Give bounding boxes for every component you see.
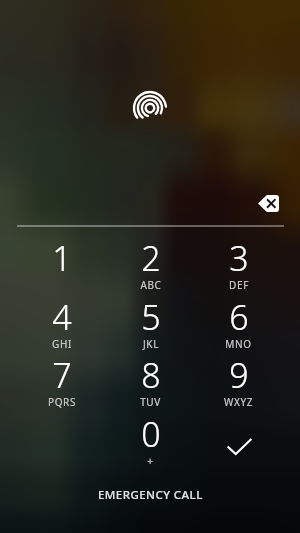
button[interactable]: 2 bbox=[106, 235, 195, 293]
staticText: TUV bbox=[140, 395, 161, 409]
button[interactable]: 0 bbox=[106, 411, 195, 469]
staticText: GHI bbox=[52, 337, 72, 351]
staticText: 5 bbox=[141, 294, 161, 340]
staticText: 0 bbox=[141, 411, 161, 457]
staticText: + bbox=[147, 454, 154, 468]
staticText: WXYZ bbox=[224, 395, 253, 409]
staticText: 8 bbox=[141, 352, 161, 398]
staticText: EMERGENCY CALL bbox=[98, 487, 203, 503]
staticText: JKL bbox=[143, 337, 159, 351]
button[interactable]: 1 bbox=[17, 235, 106, 293]
button[interactable]: 8 bbox=[106, 352, 195, 410]
button[interactable]: 5 bbox=[106, 294, 195, 352]
staticText: 4 bbox=[52, 294, 72, 340]
staticText: 3 bbox=[229, 235, 249, 281]
staticText: 9 bbox=[229, 352, 249, 398]
button[interactable]: 7 bbox=[17, 352, 106, 410]
staticText: MNO bbox=[225, 337, 252, 351]
button[interactable]: 6 bbox=[194, 294, 283, 352]
button[interactable]: EMERGENCY CALL bbox=[74, 481, 227, 509]
button[interactable]: 3 bbox=[194, 235, 283, 293]
button[interactable]: Unlock with fingerprint bbox=[126, 82, 174, 130]
button[interactable]: Confirm bbox=[213, 424, 265, 468]
staticText: 1 bbox=[52, 235, 72, 281]
staticText: 2 bbox=[141, 235, 161, 281]
staticText: 7 bbox=[52, 352, 72, 398]
button[interactable]: 4 bbox=[17, 294, 106, 352]
button[interactable]: 9 bbox=[194, 352, 283, 410]
staticText: DEF bbox=[229, 278, 249, 292]
staticText: PQRS bbox=[48, 395, 76, 409]
staticText: 6 bbox=[229, 294, 249, 340]
staticText: ABC bbox=[140, 278, 162, 292]
button[interactable]: Delete bbox=[246, 181, 290, 225]
